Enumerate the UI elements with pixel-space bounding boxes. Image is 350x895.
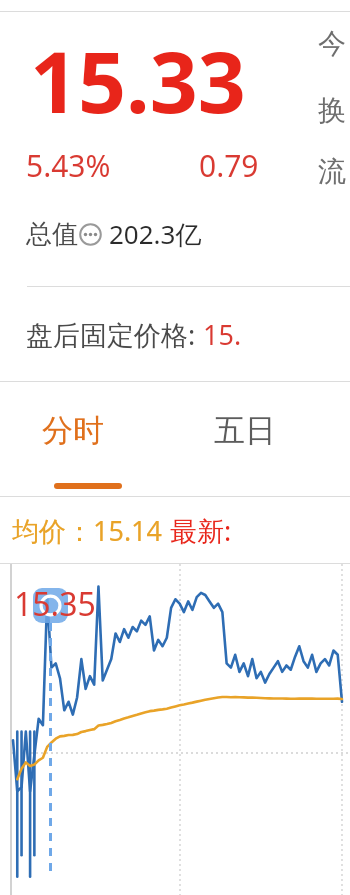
staticText: 均价：15.14 <box>12 512 170 549</box>
staticText: 15.33 <box>30 23 246 137</box>
button[interactable]: 分时 <box>14 382 164 496</box>
staticText: 分时 <box>42 411 104 450</box>
staticText: 202.3亿 <box>109 216 202 252</box>
staticText: 0.79 <box>199 145 259 186</box>
button[interactable]: 五日 <box>190 382 330 496</box>
staticText: 最新: <box>170 512 232 549</box>
staticText: 流 <box>318 154 346 189</box>
staticText: 换 <box>318 93 346 128</box>
staticText: 五日 <box>214 411 276 450</box>
staticText: 5.43% <box>26 145 111 186</box>
button[interactable]: 盘后固定价格: <box>0 287 350 381</box>
other: More info <box>79 223 102 246</box>
staticText: 15. <box>203 316 242 353</box>
staticText: 盘后固定价格: <box>26 316 203 353</box>
staticText: 总值 <box>26 218 78 251</box>
staticText: 今 <box>318 26 346 61</box>
staticText: 15.35 <box>14 582 96 626</box>
button[interactable]: 总值 <box>26 216 202 252</box>
